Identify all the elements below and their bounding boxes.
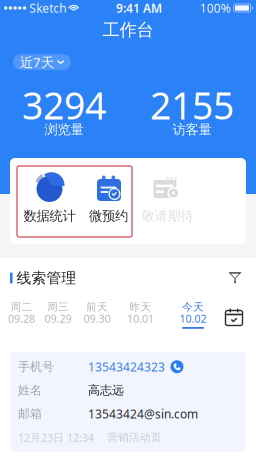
staticText: 3294 <box>22 80 106 130</box>
staticText: 近7天 <box>20 53 54 71</box>
staticText: 工作台 <box>102 19 153 41</box>
button[interactable]: 微预约 <box>79 174 138 230</box>
staticText: 手机号 <box>18 359 54 374</box>
staticText: 浏览量 <box>44 121 83 138</box>
staticText: 09.28 <box>8 311 35 326</box>
staticText: 10.01 <box>127 311 154 326</box>
staticText: 线索管理 <box>17 269 77 287</box>
staticText: 今天 <box>182 300 204 313</box>
staticText: 9:41 AM <box>116 0 162 16</box>
button[interactable]: 数据统计 <box>20 174 79 230</box>
button[interactable]: 今天 <box>173 301 213 337</box>
button[interactable]: 前天 <box>77 301 117 337</box>
staticText: 周二 <box>10 300 32 313</box>
button[interactable]: 拨打电话 <box>168 358 186 376</box>
staticText: 13543424@sin.com <box>88 406 198 422</box>
staticText: 高志远 <box>88 383 124 398</box>
button[interactable]: 昨天 <box>120 301 160 337</box>
staticText: 邮箱 <box>18 406 42 421</box>
staticText: 营销活动页 <box>107 431 162 444</box>
staticText: 12月23日 12:34 <box>18 430 94 445</box>
staticText: 10.02 <box>179 311 206 326</box>
staticText: 09.29 <box>44 311 71 326</box>
staticText: 09.30 <box>83 311 110 326</box>
staticText: 13543424323 <box>88 359 165 375</box>
staticText: 数据统计 <box>23 208 75 224</box>
staticText: 姓名 <box>18 383 42 398</box>
staticText: 微预约 <box>89 208 128 224</box>
button[interactable]: 周二 <box>1 301 41 337</box>
button[interactable]: 筛选 <box>222 267 248 289</box>
staticText: 100% <box>200 0 231 16</box>
staticText: 周三 <box>47 300 69 313</box>
staticText: 前天 <box>86 300 108 313</box>
staticText: 昨天 <box>129 300 151 313</box>
button[interactable]: 周三 <box>38 301 78 337</box>
button[interactable]: 选择日期 <box>219 302 249 332</box>
staticText: Sketch <box>29 0 66 16</box>
staticText: 敬请期待 <box>141 208 193 224</box>
staticText: 访客量 <box>172 121 211 138</box>
staticText: 2155 <box>150 80 234 130</box>
button[interactable]: 近7天 <box>13 54 71 70</box>
